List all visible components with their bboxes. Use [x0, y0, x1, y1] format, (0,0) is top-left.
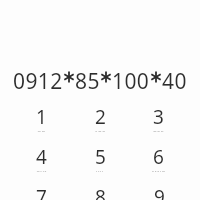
button[interactable]: Dial 9: [129, 184, 188, 200]
staticText: 7: [36, 184, 47, 200]
staticText: 6: [153, 144, 164, 170]
staticText: 3: [153, 104, 164, 130]
button[interactable]: Dial 2: [70, 104, 129, 132]
button[interactable]: Dial 3: [129, 104, 188, 132]
staticText: GHI: [36, 170, 47, 172]
staticText: DEF: [153, 130, 164, 132]
staticText: 9: [154, 184, 165, 200]
button[interactable]: Dial 8: [70, 184, 129, 200]
staticText: 40: [162, 67, 187, 89]
staticText: 5: [95, 144, 106, 170]
staticText: MNO: [152, 170, 166, 172]
button[interactable]: Dial 1: [12, 104, 70, 132]
staticText: 85: [75, 67, 100, 89]
staticText: 0912: [13, 67, 63, 89]
button[interactable]: Dial 5: [70, 144, 129, 172]
button[interactable]: Dial 7: [12, 184, 70, 200]
staticText: 1: [36, 104, 47, 130]
staticText: JKL: [96, 170, 105, 172]
staticText: 2: [95, 104, 106, 130]
button[interactable]: Dial 4: [12, 144, 70, 172]
button[interactable]: Dial 6: [129, 144, 188, 172]
staticText: 4: [36, 144, 47, 170]
staticText: 100: [112, 67, 150, 89]
staticText: QD: [37, 130, 46, 132]
staticText: ABC: [94, 130, 106, 132]
staticText: 8: [95, 184, 106, 200]
